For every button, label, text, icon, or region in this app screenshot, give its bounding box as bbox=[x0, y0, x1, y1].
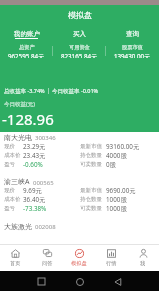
staticText: 823165.84元 bbox=[61, 52, 98, 58]
staticText: 成本价 bbox=[4, 152, 21, 159]
staticText: 1000股 bbox=[106, 195, 127, 204]
staticText: 139430.00元 bbox=[114, 52, 151, 58]
button[interactable]: 渝三峡A bbox=[0, 176, 159, 220]
button[interactable]: 问答 bbox=[31, 245, 63, 271]
staticText: 今日收益(元) bbox=[4, 100, 35, 108]
staticText: 4000股 bbox=[106, 151, 127, 160]
staticText: 9.69元 bbox=[23, 186, 42, 195]
staticText: 盈亏 bbox=[4, 161, 15, 168]
staticText: 我 bbox=[140, 260, 146, 267]
staticText: 模拟盘 bbox=[68, 10, 92, 20]
staticText: 查询 bbox=[126, 30, 139, 38]
staticText: 模拟盘 bbox=[71, 260, 87, 267]
button[interactable]: 我的账户 bbox=[0, 30, 53, 38]
staticText: 南大光电 bbox=[4, 133, 32, 142]
staticText: 最新市值 bbox=[80, 143, 102, 150]
staticText: 现价 bbox=[4, 143, 15, 150]
button[interactable]: 模拟盘 bbox=[63, 245, 95, 271]
staticText: 持仓数量 bbox=[80, 152, 102, 159]
staticText: 问答 bbox=[42, 260, 53, 267]
staticText: 现价 bbox=[4, 187, 15, 194]
button[interactable]: 首页 bbox=[0, 245, 31, 271]
staticText: 962595.84元 bbox=[8, 52, 45, 58]
staticText: 首页 bbox=[10, 260, 21, 267]
staticText: -0.60% bbox=[23, 160, 43, 169]
staticText: 持仓数量 bbox=[80, 196, 102, 203]
staticText: 23.43元 bbox=[23, 151, 46, 160]
staticText: 渝三峡A bbox=[4, 177, 30, 187]
staticText: 9690.00元 bbox=[106, 186, 136, 195]
staticText: 我的账户 bbox=[14, 30, 40, 38]
staticText: 行情 bbox=[106, 260, 117, 267]
button[interactable]: 行情 bbox=[95, 245, 127, 271]
button[interactable]: 买入 bbox=[53, 30, 106, 38]
staticText: 0股 bbox=[106, 160, 116, 169]
staticText: 今日收益率 -0.01% bbox=[52, 87, 99, 95]
button[interactable]: 查询 bbox=[106, 30, 159, 38]
staticText: 成本价 bbox=[4, 196, 21, 203]
staticText: 23.29元 bbox=[23, 142, 46, 151]
button[interactable]: 大族激光 bbox=[0, 220, 159, 232]
staticText: 可用资金 bbox=[69, 44, 90, 51]
staticText: 最新市值 bbox=[80, 187, 102, 194]
staticText: -128.96 bbox=[2, 109, 54, 129]
button[interactable]: 我 bbox=[127, 245, 159, 271]
staticText: 1000股 bbox=[106, 204, 127, 213]
staticText: 大族激光 bbox=[4, 222, 32, 231]
button[interactable]: 南大光电 bbox=[0, 132, 159, 176]
staticText: 买入 bbox=[73, 30, 86, 38]
staticText: 002008 bbox=[35, 223, 56, 231]
staticText: 000565 bbox=[33, 179, 54, 187]
staticText: 股票市值 bbox=[122, 44, 143, 51]
staticText: 300346 bbox=[35, 134, 56, 142]
staticText: 总资产 bbox=[19, 44, 35, 51]
staticText: -73.38% bbox=[23, 204, 47, 213]
staticText: 可卖数量 bbox=[80, 161, 102, 168]
staticText: 总收益率 -3.74% bbox=[4, 87, 45, 95]
staticText: 可卖数量 bbox=[80, 205, 102, 212]
staticText: 36.40元 bbox=[23, 195, 46, 204]
staticText: 93160.00元 bbox=[106, 142, 140, 151]
staticText: 盈亏 bbox=[4, 205, 15, 212]
